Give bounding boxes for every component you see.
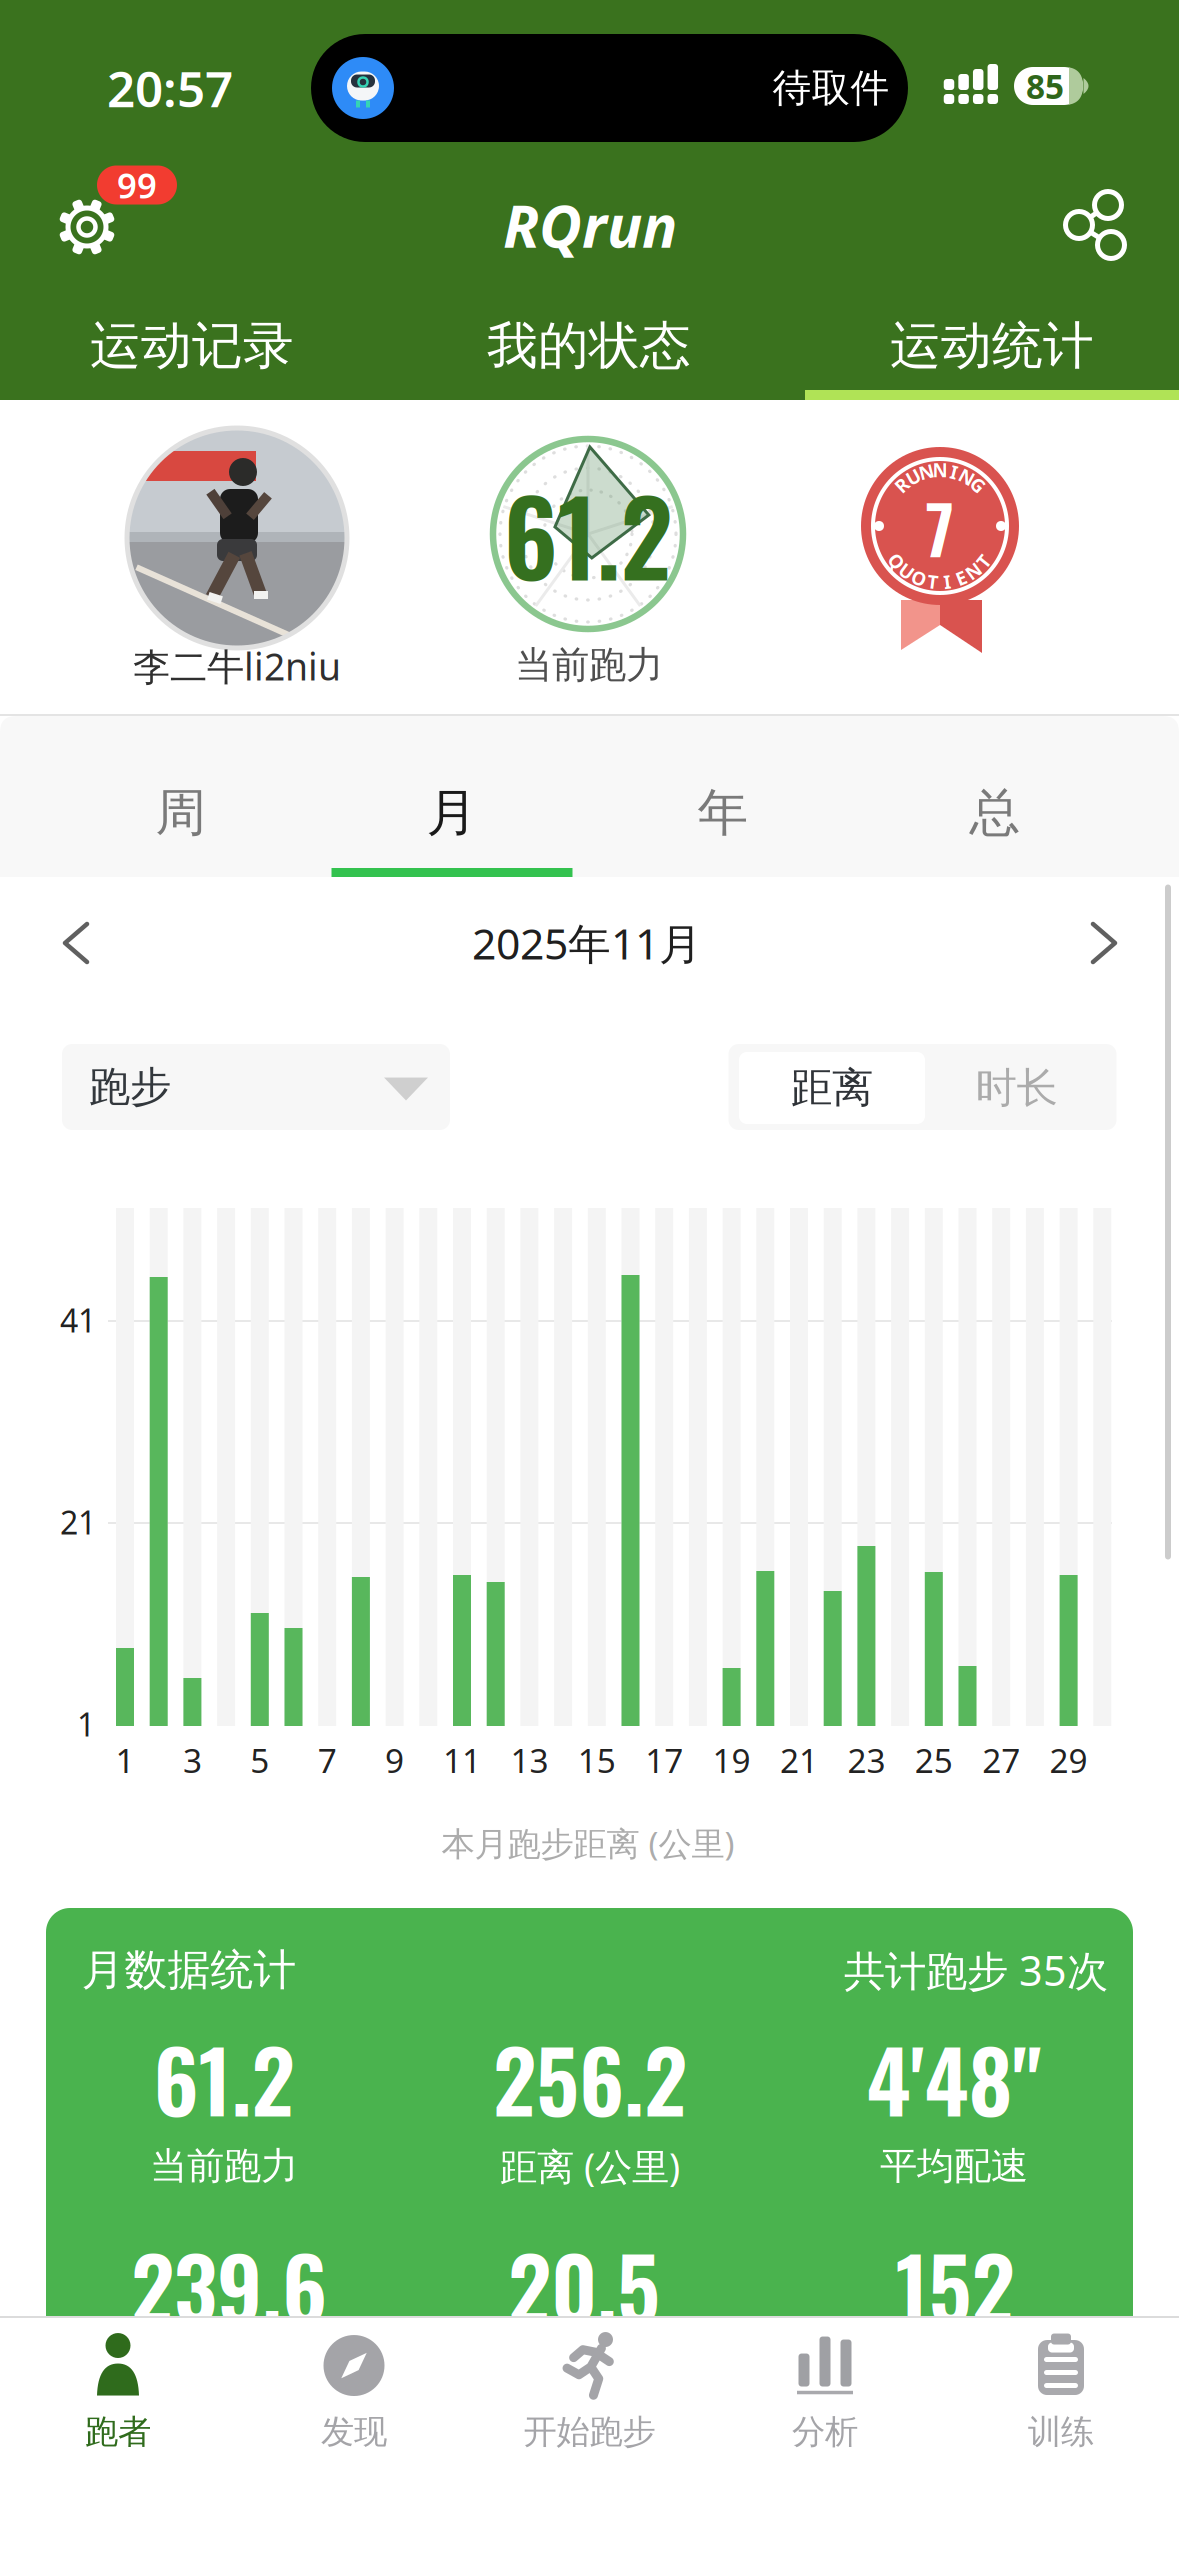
staticText: 61.2 xyxy=(503,458,672,610)
staticText: 发现 xyxy=(321,2411,387,2452)
button[interactable]: Next month xyxy=(1075,906,1133,980)
staticText: 周 xyxy=(155,782,206,844)
staticText: 256.2 xyxy=(493,2015,687,2141)
staticText: 85 xyxy=(1026,64,1064,108)
staticText: 当前跑力 xyxy=(150,2143,298,2189)
staticText: 13 xyxy=(510,1738,548,1782)
staticText: 152 xyxy=(895,2222,1014,2348)
staticText: 开始跑步 xyxy=(523,2411,655,2452)
staticText: 月数据统计 xyxy=(81,1944,296,1996)
staticText: N xyxy=(959,464,974,489)
button[interactable]: 发现 xyxy=(239,2317,469,2467)
staticText: RQrun xyxy=(503,186,677,264)
staticText: N xyxy=(932,458,947,482)
button[interactable]: 周 xyxy=(46,738,316,888)
staticText: 运动统计 xyxy=(890,315,1094,377)
staticText: I xyxy=(944,569,951,594)
staticText: 距离 (公里) xyxy=(500,2141,680,2191)
staticText: 距离 xyxy=(791,1063,873,1113)
staticText: 7 xyxy=(318,1738,337,1782)
staticText: T xyxy=(927,569,938,594)
staticText: U xyxy=(900,559,914,583)
staticText: 21 xyxy=(780,1738,818,1782)
staticText: 月 xyxy=(426,782,477,844)
button[interactable]: 开始跑步 xyxy=(474,2317,704,2467)
staticText: 训练 xyxy=(1028,2411,1094,2452)
staticText: U xyxy=(906,464,920,489)
button[interactable]: 月 xyxy=(317,738,587,888)
staticText: 27 xyxy=(982,1738,1020,1782)
staticText: 2025年11月 xyxy=(472,915,702,971)
staticText: G xyxy=(971,473,985,497)
staticText: N xyxy=(919,459,934,484)
staticText: 20:57 xyxy=(107,55,233,121)
staticText: 时长 xyxy=(975,1063,1057,1113)
staticText: 总 xyxy=(969,782,1020,844)
button[interactable]: 时长 xyxy=(931,1052,1101,1124)
button[interactable]: 分析 xyxy=(710,2317,940,2467)
staticText: 当前跑力 xyxy=(515,642,663,688)
staticText: 15 xyxy=(578,1738,616,1782)
staticText: E xyxy=(956,566,966,590)
staticText: 我的状态 xyxy=(487,315,691,377)
staticText: 5 xyxy=(250,1738,269,1782)
staticText: 1 xyxy=(115,1738,134,1782)
staticText: 1 xyxy=(77,1703,95,1745)
staticText: 共计跑步 35次 xyxy=(844,1943,1108,1997)
staticText: 跑步 xyxy=(89,1062,171,1112)
staticText: 总时长 (时) xyxy=(494,2348,674,2398)
staticText: 41 xyxy=(60,1299,96,1341)
staticText: 李二牛li2niu xyxy=(133,641,341,691)
staticText: 29 xyxy=(1050,1738,1088,1782)
staticText: 本月跑步距离 (公里) xyxy=(441,1821,734,1865)
staticText: T xyxy=(978,549,989,574)
staticText: 20.5 xyxy=(508,2222,660,2348)
button[interactable]: Settings xyxy=(58,198,116,256)
staticText: I xyxy=(950,459,957,484)
button[interactable]: Previous month xyxy=(47,906,105,980)
staticText: Q xyxy=(889,549,904,574)
staticText: 分析 xyxy=(792,2411,858,2452)
staticText: 年 xyxy=(697,782,748,844)
staticText: 19 xyxy=(713,1738,751,1782)
button[interactable]: 年 xyxy=(588,738,858,888)
staticText: 61.2 xyxy=(153,2015,294,2141)
button[interactable]: 总 xyxy=(860,738,1130,888)
staticText: 11 xyxy=(443,1738,481,1782)
staticText: 跑者 xyxy=(85,2411,151,2452)
staticText: 运动记录 xyxy=(90,315,294,377)
staticText: 平均配速 xyxy=(880,2143,1028,2189)
staticText: 4'48" xyxy=(866,2015,1041,2141)
staticText: 23 xyxy=(847,1738,885,1782)
button[interactable]: 训练 xyxy=(946,2317,1176,2467)
button[interactable]: 我的状态 xyxy=(392,301,785,391)
button[interactable]: 跑者 xyxy=(3,2317,233,2467)
staticText: 99 xyxy=(117,162,157,208)
staticText: 待取件 xyxy=(772,64,889,112)
button[interactable]: 运动记录 xyxy=(0,301,388,391)
staticText: 7 xyxy=(925,478,954,576)
staticText: 25 xyxy=(915,1738,953,1782)
button[interactable]: 距离 xyxy=(739,1052,925,1124)
staticText: 21 xyxy=(60,1501,96,1543)
button[interactable]: 运动统计 xyxy=(795,301,1179,391)
staticText: 17 xyxy=(645,1738,683,1782)
button[interactable]: 跑步 xyxy=(62,1044,450,1130)
staticText: 239.6 xyxy=(131,2222,327,2348)
staticText: N xyxy=(966,559,981,583)
staticText: O xyxy=(912,566,927,590)
staticText: R xyxy=(896,473,908,497)
button[interactable]: Share xyxy=(1064,194,1126,256)
staticText: 9 xyxy=(385,1738,404,1782)
staticText: 3 xyxy=(183,1738,202,1782)
